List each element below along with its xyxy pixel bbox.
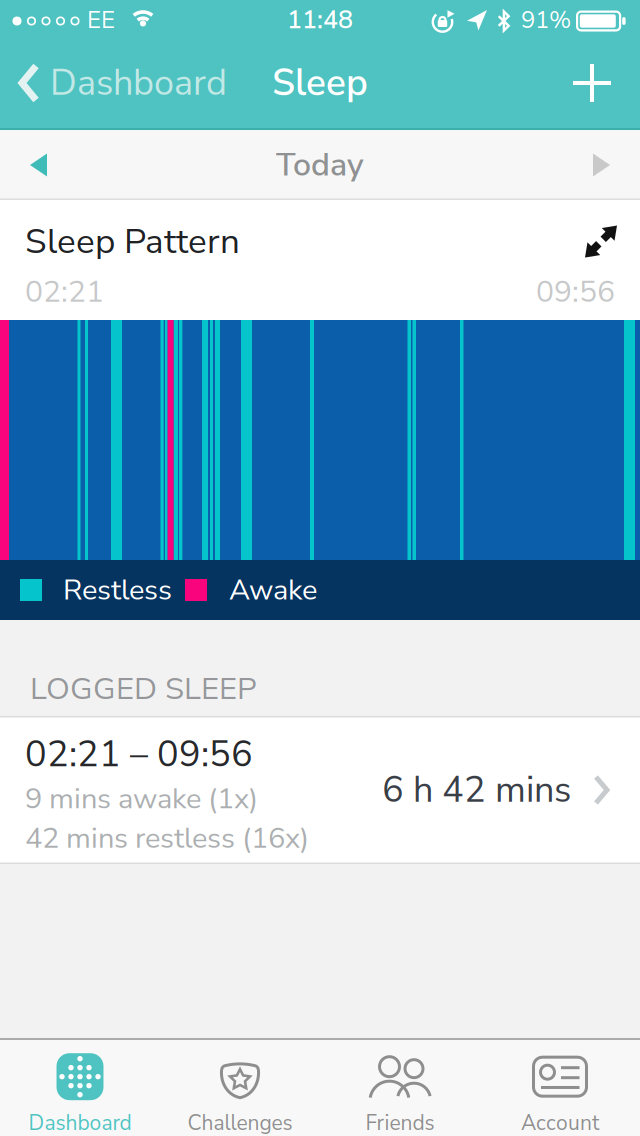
staticText: LOGGED SLEEP: [30, 668, 257, 710]
staticText: 09:56: [536, 271, 615, 312]
staticText: 11:48: [287, 3, 353, 37]
staticText: 02:21: [25, 271, 104, 312]
staticText: 91%: [521, 4, 571, 36]
staticText: EE: [87, 4, 115, 36]
staticText: Friends: [365, 1109, 434, 1136]
staticText: Restless: [63, 570, 172, 610]
button[interactable]: Dashboard: [0, 1038, 160, 1136]
staticText: Sleep: [272, 58, 368, 108]
staticText: Today: [276, 143, 364, 187]
button[interactable]: [591, 151, 611, 178]
staticText: 9 mins awake (1x): [25, 779, 258, 819]
button[interactable]: [585, 225, 617, 257]
staticText: Account: [521, 1109, 599, 1136]
staticText: Dashboard: [28, 1109, 131, 1136]
staticText: 42 mins restless (16x): [25, 819, 309, 858]
staticText: Challenges: [187, 1109, 292, 1136]
button[interactable]: Dashboard: [17, 58, 227, 107]
button[interactable]: [572, 63, 612, 103]
staticText: 02:21 – 09:56: [25, 730, 253, 779]
staticText: Awake: [229, 570, 317, 610]
button[interactable]: Challenges: [160, 1038, 320, 1136]
button[interactable]: [29, 151, 49, 178]
staticText: Sleep Pattern: [25, 218, 240, 265]
button[interactable]: 02:21 – 09:56: [0, 716, 640, 864]
button[interactable]: Friends: [320, 1038, 480, 1136]
staticText: 6 h 42 mins: [382, 765, 571, 814]
button[interactable]: Account: [480, 1038, 640, 1136]
staticText: Dashboard: [50, 58, 227, 107]
